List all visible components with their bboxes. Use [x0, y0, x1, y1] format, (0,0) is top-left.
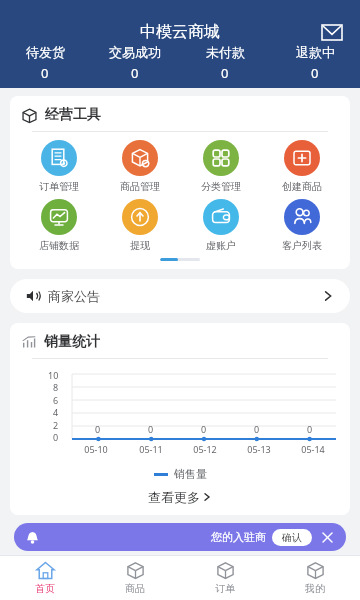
staticText: 店铺数据 [39, 239, 79, 252]
staticText: 05-10 [84, 443, 108, 455]
staticText: 待发货 [26, 44, 65, 60]
button[interactable]: 首页 [0, 556, 90, 600]
button[interactable]: 商家公告 [10, 279, 350, 313]
staticText: 6 [53, 394, 59, 406]
staticText: 我的 [305, 582, 325, 595]
staticText: 4 [53, 406, 59, 418]
button[interactable]: 确认 [272, 529, 312, 546]
staticText: 退款中 [296, 44, 335, 60]
staticText: 创建商品 [282, 180, 322, 193]
staticText: 商品管理 [120, 180, 160, 193]
button[interactable]: 分类管理 [180, 140, 261, 193]
staticText: 虚账户 [206, 239, 236, 252]
staticText: 0 [148, 423, 154, 435]
staticText: 0 [95, 423, 101, 435]
button[interactable]: 未付款 [180, 44, 270, 82]
staticText: 中模云商城 [140, 22, 220, 42]
staticText: 0 [311, 64, 319, 82]
staticText: 订单管理 [39, 180, 79, 193]
staticText: 确认 [282, 531, 302, 544]
staticText: 未付款 [206, 44, 245, 60]
staticText: 05-14 [301, 443, 325, 455]
staticText: 分类管理 [201, 180, 241, 193]
staticText: 0 [41, 64, 49, 82]
button[interactable]: Messages [318, 18, 346, 46]
staticText: 客户列表 [282, 239, 322, 252]
button[interactable]: 虚账户 [180, 199, 261, 252]
other: Notification [26, 531, 39, 544]
button[interactable]: 退款中 [270, 44, 360, 82]
button[interactable]: 订单 [180, 556, 270, 600]
staticText: 05-13 [247, 443, 271, 455]
button[interactable]: 店铺数据 [18, 199, 99, 252]
staticText: 0 [201, 423, 207, 435]
staticText: 2 [53, 419, 59, 431]
staticText: 0 [254, 423, 260, 435]
button[interactable]: 商品 [90, 556, 180, 600]
button[interactable]: Close [320, 530, 334, 544]
staticText: 提现 [130, 239, 150, 252]
staticText: 查看更多 [148, 489, 200, 505]
staticText: 05-12 [193, 443, 217, 455]
staticText: 0 [53, 431, 59, 443]
button[interactable]: 创建商品 [261, 140, 342, 193]
staticText: 05-11 [139, 443, 163, 455]
staticText: 8 [53, 381, 59, 393]
button[interactable]: 客户列表 [261, 199, 342, 252]
button[interactable]: 提现 [99, 199, 180, 252]
staticText: 0 [131, 64, 139, 82]
staticText: 订单 [215, 582, 235, 595]
button[interactable]: 订单管理 [18, 140, 99, 193]
staticText: 首页 [35, 582, 55, 595]
button[interactable]: 待发货 [0, 44, 90, 82]
staticText: 销量统计 [44, 333, 100, 351]
staticText: 0 [221, 64, 229, 82]
staticText: 0 [307, 423, 313, 435]
staticText: 您的入驻商 [211, 530, 266, 544]
staticText: 交易成功 [109, 44, 161, 60]
button[interactable]: 我的 [270, 556, 360, 600]
staticText: 销售量 [174, 467, 207, 481]
button[interactable]: 商品管理 [99, 140, 180, 193]
staticText: 商家公告 [48, 288, 100, 304]
staticText: 商品 [125, 582, 145, 595]
button[interactable]: 交易成功 [90, 44, 180, 82]
staticText: 10 [48, 369, 59, 381]
staticText: 经营工具 [45, 106, 101, 124]
button[interactable]: 查看更多 [10, 487, 350, 507]
